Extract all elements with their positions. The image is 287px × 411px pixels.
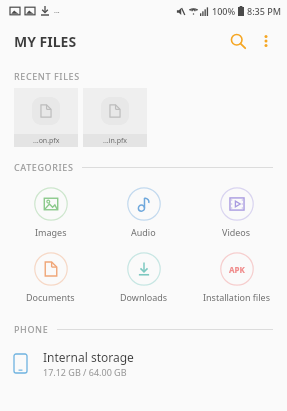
- button[interactable]: Audio: [97, 183, 190, 242]
- staticText: Documents: [26, 291, 75, 303]
- staticText: Downloads: [120, 291, 168, 303]
- button[interactable]: ...on.pfx: [14, 88, 78, 147]
- staticText: ...: [54, 6, 60, 16]
- staticText: Installation files: [203, 291, 270, 303]
- staticText: 100%: [212, 5, 236, 17]
- button[interactable]: More options: [253, 28, 279, 54]
- staticText: RECENT FILES: [14, 70, 80, 82]
- staticText: Audio: [131, 226, 156, 238]
- staticText: ...in.pfx: [103, 136, 128, 146]
- staticText: 17.12 GB / 64.00 GB: [43, 366, 127, 378]
- button[interactable]: Images: [4, 183, 97, 242]
- button[interactable]: Downloads: [97, 248, 190, 307]
- staticText: ...on.pfx: [33, 136, 60, 146]
- button[interactable]: APK: [190, 248, 283, 307]
- staticText: Videos: [222, 226, 251, 238]
- button[interactable]: Search: [223, 26, 253, 56]
- staticText: Internal storage: [43, 349, 134, 365]
- staticText: 8:35 PM: [247, 5, 281, 17]
- staticText: PHONE: [14, 323, 49, 335]
- button[interactable]: Videos: [190, 183, 283, 242]
- staticText: MY FILES: [14, 32, 77, 51]
- button[interactable]: Documents: [4, 248, 97, 307]
- staticText: CATEGORIES: [14, 161, 74, 173]
- staticText: APK: [229, 264, 245, 275]
- button[interactable]: ...in.pfx: [83, 88, 147, 147]
- button[interactable]: Internal storage: [0, 343, 287, 383]
- staticText: Images: [35, 226, 67, 238]
